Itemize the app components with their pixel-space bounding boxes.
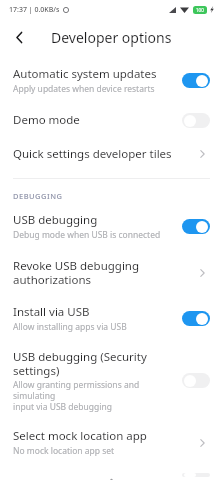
staticText: USB debugging	[13, 212, 98, 228]
other: Open	[194, 435, 210, 451]
staticText: Revoke USB debugging authorizations	[13, 258, 188, 287]
staticText: 17:37 | 0.0KB/s	[9, 5, 60, 15]
staticText: 100	[196, 7, 204, 13]
staticText: Quick settings developer tiles	[13, 146, 172, 162]
button[interactable]: Toggle, on	[182, 73, 210, 88]
button[interactable]: Toggle, on	[182, 311, 210, 326]
other: Open	[194, 265, 210, 281]
button[interactable]: USB debugging (Security settings)	[0, 341, 222, 420]
button[interactable]: Quick settings developer tiles	[0, 137, 222, 171]
staticText: DEBUGGING	[13, 191, 63, 201]
button[interactable]: Install via USB	[0, 296, 222, 341]
staticText: Allow installing apps via USB	[13, 321, 127, 333]
button[interactable]: Toggle, off	[182, 373, 210, 388]
staticText: Apply updates when device restarts	[13, 83, 155, 95]
button[interactable]: Toggle, on	[182, 219, 210, 234]
staticText: Developer options	[51, 28, 172, 47]
staticText: Install via USB	[13, 304, 90, 320]
button[interactable]: Toggle, off	[182, 473, 210, 477]
button[interactable]: Revoke USB debugging authorizations	[0, 249, 222, 296]
button[interactable]: USB debugging	[0, 207, 222, 249]
button[interactable]: Automatic system updates	[0, 61, 222, 103]
button[interactable]: Navigate up	[5, 23, 33, 51]
staticText: USB debugging (Security settings)	[13, 349, 176, 378]
other: Open	[194, 146, 210, 162]
button[interactable]: Select mock location app	[0, 420, 222, 465]
button[interactable]: Toggle, off	[182, 113, 210, 128]
staticText: Select mock location app	[13, 428, 147, 444]
staticText: No mock location app set	[13, 445, 115, 457]
button[interactable]: Demo mode	[0, 103, 222, 137]
staticText: Automatic system updates	[13, 66, 157, 82]
staticText: Demo mode	[13, 112, 80, 128]
staticText: Debug mode when USB is connected	[13, 229, 161, 241]
staticText: Allow granting permissions and simulatin…	[13, 379, 176, 412]
